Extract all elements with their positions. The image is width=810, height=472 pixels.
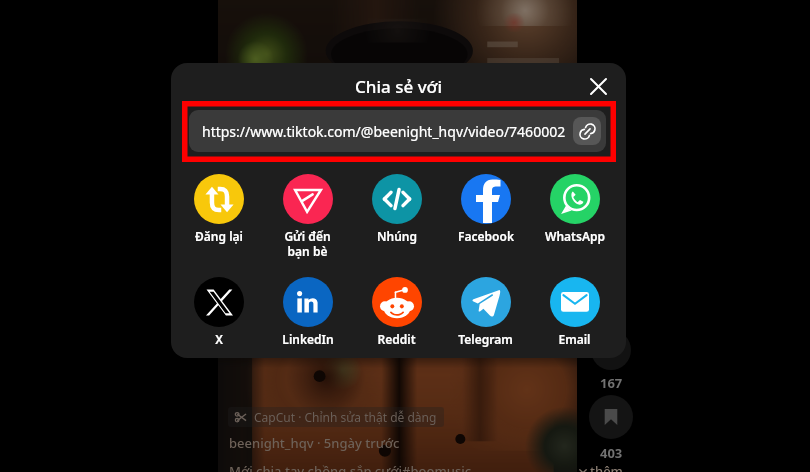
staticText: thêm	[590, 462, 623, 472]
button[interactable]: WhatsApp	[530, 174, 619, 244]
staticText: CapCut · Chỉnh sửa thật dễ dàng	[254, 409, 437, 425]
button[interactable]: Close	[580, 68, 616, 104]
button[interactable]: Email	[530, 277, 619, 347]
button[interactable]: Bookmark	[589, 395, 633, 439]
button[interactable]: Telegram	[441, 277, 530, 347]
button[interactable]: X	[174, 277, 263, 347]
staticText: LinkedIn	[282, 331, 334, 347]
staticText: Nhúng	[377, 228, 417, 244]
staticText: Telegram	[458, 331, 513, 347]
staticText: 167	[600, 374, 623, 392]
button[interactable]: Nhúng	[352, 174, 441, 244]
button[interactable]: CapCut · Chỉnh sửa thật dễ dàng	[228, 407, 444, 427]
staticText: 403	[600, 444, 623, 462]
staticText: Reddit	[377, 331, 416, 347]
staticText: https://www.tiktok.com/@beenight_hqv/vid…	[202, 122, 566, 141]
button[interactable]: Đăng lại	[174, 174, 263, 244]
staticText: Email	[558, 331, 591, 347]
staticText: Mới chia tay chồng sắp cưới#boomusic	[229, 462, 472, 472]
staticText: beenight_hqv · 5ngày trước	[229, 434, 400, 452]
staticText: Đăng lại	[195, 228, 243, 244]
staticText: Facebook	[458, 228, 514, 244]
button[interactable]: Copy link	[573, 117, 601, 145]
button[interactable]: LinkedIn	[263, 277, 352, 347]
button[interactable]: Gửi đến bạn bè	[263, 174, 352, 259]
button[interactable]: Facebook	[441, 174, 530, 244]
button[interactable]: Comments	[591, 330, 631, 370]
button[interactable]: Reddit	[352, 277, 441, 347]
staticText: X	[215, 331, 223, 347]
staticText: Chia sẻ với	[355, 75, 442, 98]
button[interactable]: thêm	[579, 462, 623, 472]
button[interactable]: https://www.tiktok.com/@beenight_hqv/vid…	[189, 110, 606, 152]
staticText: WhatsApp	[545, 228, 605, 244]
staticText: Gửi đến bạn bè	[284, 228, 331, 259]
